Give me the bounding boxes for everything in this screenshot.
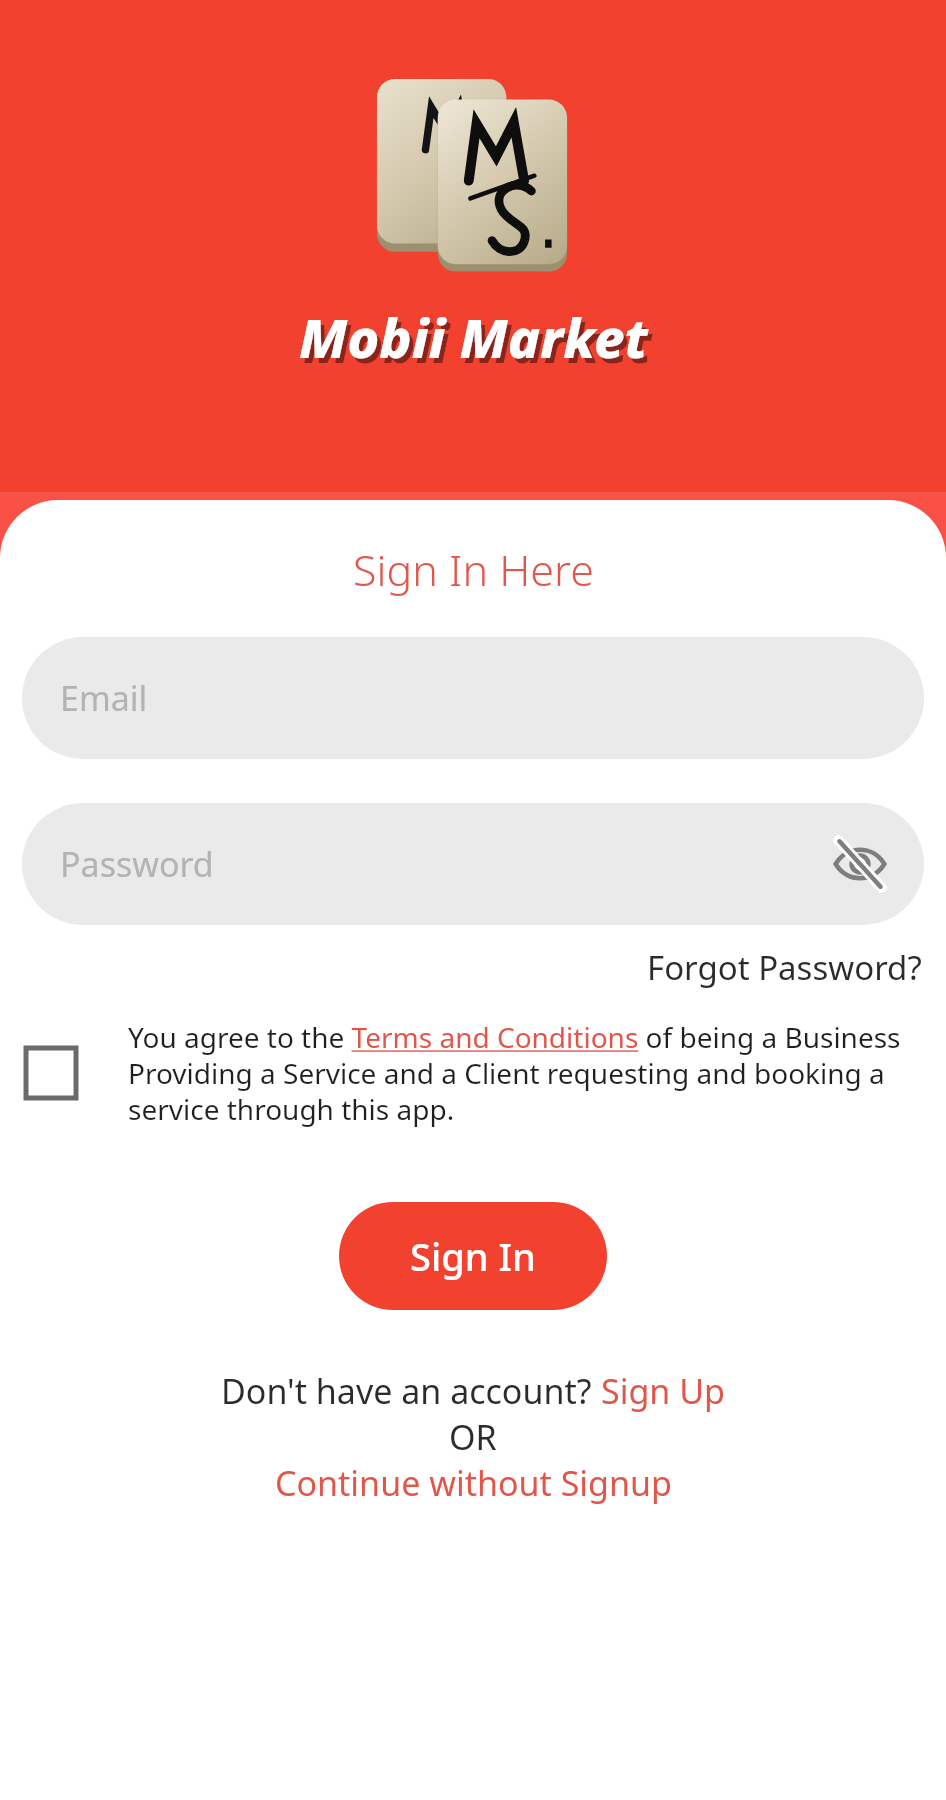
button[interactable]: Sign In (339, 1202, 607, 1310)
staticText: You agree to the Terms and Conditions of… (128, 1018, 920, 1128)
staticText: Don't have an account? (221, 1368, 601, 1414)
staticText: Sign In Here (353, 540, 594, 599)
button[interactable]: Show password (822, 826, 898, 902)
button[interactable]: Forgot Password? (643, 941, 926, 994)
button[interactable]: Don't have an account? (221, 1368, 725, 1414)
staticText: Sign In (410, 1230, 536, 1282)
staticText: Password (60, 841, 214, 887)
button[interactable]: Email (22, 637, 924, 759)
button[interactable]: You agree to the Terms and Conditions of… (26, 1018, 920, 1128)
button[interactable]: Continue without Signup (275, 1460, 672, 1506)
button[interactable]: Password (22, 803, 924, 925)
staticText: Mobii Market (303, 305, 652, 379)
staticText: Sign Up (601, 1368, 725, 1414)
staticText: Email (60, 675, 148, 721)
staticText: Forgot Password? (647, 945, 922, 990)
staticText: Continue without Signup (275, 1460, 672, 1506)
staticText: Mobii Market (299, 300, 648, 374)
staticText: OR (449, 1414, 497, 1460)
